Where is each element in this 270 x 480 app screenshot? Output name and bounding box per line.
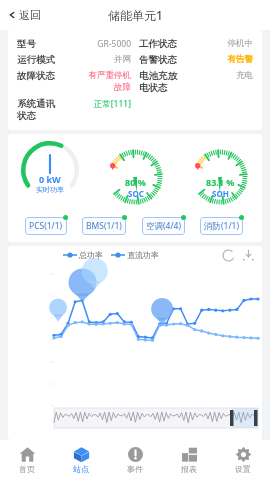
staticText: 总功率 [79, 250, 103, 260]
button[interactable]: 刷新 [220, 247, 236, 263]
staticText: GR-5000 [74, 38, 131, 50]
staticText: 系统通讯 状态 [17, 98, 74, 122]
staticText: 运行模式 [17, 54, 74, 66]
staticText: SOH [212, 188, 229, 199]
staticText: 充电 [196, 70, 253, 81]
staticText: 首页 [19, 464, 35, 474]
button[interactable]: 返回 [6, 5, 43, 25]
button[interactable]: 事件 [108, 440, 162, 480]
staticText: 返回 [19, 8, 41, 22]
staticText: 83.1 % [206, 176, 235, 188]
button[interactable]: 首页 [0, 440, 54, 480]
staticText: 0 kW [39, 173, 61, 185]
staticText: 告警状态 [139, 54, 196, 66]
staticText: 型号 [17, 38, 74, 50]
staticText: 电池充放 电状态 [139, 70, 196, 94]
button[interactable]: 空调(4/4) [142, 214, 187, 235]
staticText: 事件 [127, 464, 143, 474]
staticText: SOC [128, 188, 144, 199]
button[interactable]: 设置 [216, 440, 270, 480]
button[interactable]: 下载 [240, 247, 256, 263]
button[interactable]: 站点 [54, 440, 108, 480]
staticText: 工作状态 [139, 38, 196, 50]
staticText: BMS(1/1) [86, 220, 122, 232]
button[interactable]: 消防(1/1) [200, 214, 245, 235]
staticText: 实时功率 [36, 185, 64, 194]
staticText: 正常[111] [74, 98, 131, 110]
staticText: 有告警 [196, 54, 253, 65]
button[interactable]: BMS(1/1) [82, 214, 128, 235]
staticText: PCS(1/1) [29, 220, 63, 232]
staticText: 故障状态 [17, 70, 74, 82]
button[interactable]: PCS(1/1) [25, 214, 69, 235]
staticText: 报表 [181, 464, 197, 474]
staticText: 并网 [74, 54, 131, 65]
staticText: 空调(4/4) [146, 220, 181, 232]
staticText: 站点 [73, 464, 89, 474]
staticText: 设置 [235, 464, 251, 474]
staticText: 消防(1/1) [204, 220, 239, 232]
staticText: 直流功率 [127, 250, 159, 260]
staticText: 80 % [125, 176, 146, 188]
staticText: 停机中 [196, 38, 253, 49]
button[interactable]: 报表 [162, 440, 216, 480]
staticText: 储能单元1 [108, 7, 163, 23]
staticText: 有严重停机 故障 [74, 70, 131, 92]
